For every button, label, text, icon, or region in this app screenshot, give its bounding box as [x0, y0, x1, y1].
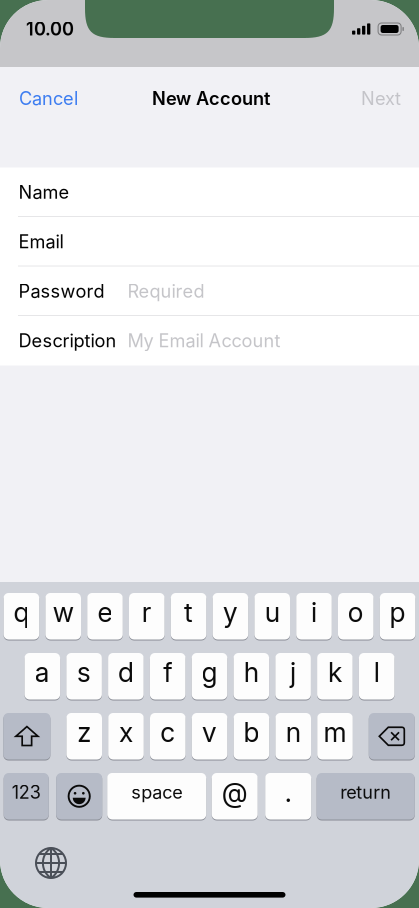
- staticText: c: [160, 716, 175, 748]
- button[interactable]: p: [380, 592, 415, 640]
- button[interactable]: o: [338, 592, 374, 640]
- staticText: a: [35, 656, 50, 688]
- staticText: Required: [127, 280, 204, 302]
- staticText: New Account: [152, 87, 270, 109]
- button[interactable]: f: [150, 652, 185, 700]
- staticText: e: [97, 596, 112, 628]
- staticText: d: [118, 656, 134, 688]
- button[interactable]: Switch keyboard: [27, 839, 75, 887]
- staticText: Next: [361, 87, 401, 109]
- button[interactable]: Cancel: [16, 77, 81, 119]
- staticText: q: [13, 596, 29, 628]
- staticText: v: [202, 716, 217, 748]
- button[interactable]: d: [108, 652, 144, 700]
- button[interactable]: z: [66, 712, 102, 760]
- button[interactable]: b: [234, 712, 269, 760]
- staticText: h: [244, 656, 259, 688]
- button[interactable]: s: [66, 652, 102, 700]
- staticText: My Email Account: [127, 330, 280, 352]
- staticText: Password: [18, 280, 104, 302]
- button[interactable]: .: [265, 772, 311, 820]
- staticText: u: [265, 596, 280, 628]
- staticText: @: [222, 776, 248, 808]
- staticText: i: [311, 596, 317, 628]
- staticText: space: [131, 781, 182, 803]
- button[interactable]: a: [24, 652, 60, 700]
- staticText: s: [77, 656, 91, 688]
- staticText: y: [223, 596, 238, 628]
- button[interactable]: v: [192, 712, 227, 760]
- button[interactable]: e: [87, 592, 123, 640]
- button[interactable]: 123: [4, 772, 49, 820]
- button[interactable]: Emoji: [56, 772, 102, 820]
- button[interactable]: l: [359, 652, 394, 700]
- staticText: k: [328, 656, 342, 688]
- staticText: g: [201, 656, 217, 688]
- button[interactable]: m: [317, 712, 353, 760]
- button[interactable]: u: [254, 592, 290, 640]
- staticText: t: [184, 596, 193, 628]
- staticText: j: [290, 656, 296, 688]
- staticText: m: [323, 716, 346, 748]
- button[interactable]: x: [108, 712, 144, 760]
- button[interactable]: t: [171, 592, 206, 640]
- staticText: n: [286, 716, 301, 748]
- staticText: Description: [18, 330, 116, 352]
- button[interactable]: i: [296, 592, 332, 640]
- button[interactable]: n: [275, 712, 311, 760]
- button[interactable]: r: [129, 592, 165, 640]
- staticText: p: [390, 596, 406, 628]
- button[interactable]: k: [317, 652, 353, 700]
- button[interactable]: g: [192, 652, 227, 700]
- button[interactable]: w: [45, 592, 81, 640]
- staticText: l: [374, 656, 380, 688]
- staticText: Name: [18, 181, 69, 203]
- staticText: o: [348, 596, 364, 628]
- button[interactable]: h: [233, 652, 269, 700]
- staticText: r: [142, 596, 152, 628]
- button[interactable]: @: [212, 772, 258, 820]
- button[interactable]: j: [275, 652, 311, 700]
- staticText: 10.00: [26, 18, 74, 40]
- staticText: z: [77, 716, 91, 748]
- staticText: .: [285, 776, 292, 808]
- button[interactable]: space: [107, 772, 206, 820]
- staticText: Email: [18, 231, 63, 253]
- staticText: x: [119, 716, 133, 748]
- staticText: 123: [12, 781, 41, 803]
- button[interactable]: return: [317, 772, 415, 820]
- button[interactable]: Next: [358, 77, 404, 119]
- staticText: Cancel: [19, 87, 78, 109]
- staticText: return: [340, 781, 391, 803]
- button[interactable]: Delete: [369, 712, 415, 760]
- staticText: b: [243, 716, 259, 748]
- button[interactable]: q: [4, 592, 39, 640]
- staticText: w: [53, 596, 74, 628]
- button[interactable]: y: [213, 592, 248, 640]
- button[interactable]: Shift: [3, 712, 50, 760]
- staticText: f: [163, 656, 172, 688]
- button[interactable]: c: [150, 712, 186, 760]
